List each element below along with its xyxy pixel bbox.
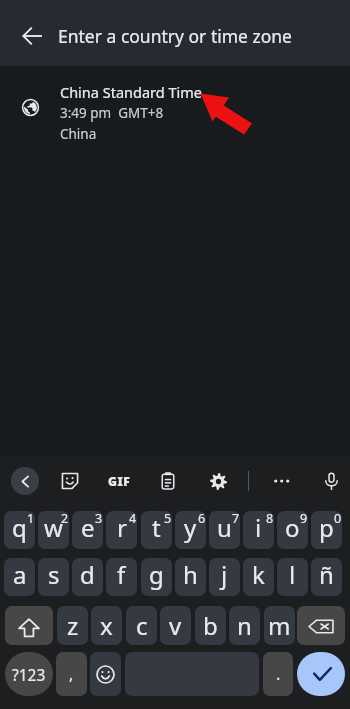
button[interactable]: l <box>277 558 308 596</box>
button[interactable]: n <box>229 606 260 645</box>
staticText: ñ <box>319 558 334 591</box>
button[interactable]: f <box>106 558 137 596</box>
button[interactable]: y <box>175 511 206 549</box>
button[interactable]: r <box>106 511 137 549</box>
button[interactable]: m <box>264 606 295 645</box>
staticText: f <box>117 558 126 591</box>
button[interactable]: w <box>38 511 69 549</box>
button[interactable]: e <box>72 511 103 549</box>
staticText: b <box>203 609 218 642</box>
button[interactable]: v <box>160 606 191 645</box>
button[interactable]: b <box>195 606 226 645</box>
button[interactable]: , <box>56 652 87 696</box>
button[interactable]: d <box>72 558 103 596</box>
button[interactable]: GIF <box>105 467 133 495</box>
staticText: u <box>217 511 232 544</box>
button[interactable]: g <box>141 558 172 596</box>
button[interactable]: o <box>277 511 308 549</box>
staticText: s <box>48 558 60 591</box>
staticText: c <box>136 609 148 642</box>
button[interactable]: Symbols <box>5 652 53 696</box>
button[interactable]: Emoji <box>90 652 121 696</box>
staticText: , <box>69 663 74 685</box>
staticText: 4 <box>129 511 137 527</box>
staticText: k <box>252 558 265 591</box>
staticText: r <box>117 511 127 544</box>
staticText: g <box>149 558 164 591</box>
staticText: l <box>289 558 296 591</box>
staticText: x <box>100 609 113 642</box>
button[interactable]: Collapse toolbar <box>11 467 39 495</box>
staticText: China Standard Time <box>60 82 202 102</box>
button[interactable]: ñ <box>311 558 342 596</box>
staticText: h <box>183 558 198 591</box>
button[interactable]: Stickers <box>56 467 84 495</box>
staticText: n <box>237 609 252 642</box>
staticText: y <box>184 511 197 544</box>
button[interactable]: i <box>243 511 274 549</box>
staticText: w <box>44 511 63 544</box>
button[interactable]: Clipboard <box>154 467 182 495</box>
button[interactable]: j <box>209 558 240 596</box>
staticText: 3 <box>95 511 103 527</box>
staticText: j <box>221 558 228 591</box>
button[interactable]: s <box>38 558 69 596</box>
staticText: p <box>319 511 334 544</box>
staticText: 0 <box>334 511 342 527</box>
staticText: 6 <box>198 511 206 527</box>
button[interactable]: a <box>4 558 35 596</box>
staticText: 9 <box>300 511 308 527</box>
staticText: Enter a country or time zone <box>58 24 292 48</box>
button[interactable]: Settings <box>204 467 232 495</box>
staticText: a <box>13 558 27 591</box>
staticText: 3:49 pm GMT+8 <box>60 104 164 122</box>
staticText: 8 <box>266 511 274 527</box>
button[interactable]: p <box>311 511 342 549</box>
staticText: q <box>12 511 27 544</box>
button[interactable]: x <box>91 606 122 645</box>
staticText: China <box>60 125 97 143</box>
staticText: t <box>152 511 161 544</box>
button[interactable]: . <box>263 652 293 696</box>
button[interactable]: More options <box>267 467 295 495</box>
button[interactable]: Enter <box>297 652 345 696</box>
staticText: m <box>268 609 291 642</box>
staticText: 2 <box>61 511 69 527</box>
button[interactable]: u <box>209 511 240 549</box>
staticText: ?123 <box>12 664 46 685</box>
button[interactable]: Back <box>15 19 49 53</box>
staticText: 5 <box>164 511 172 527</box>
staticText: 7 <box>232 511 240 527</box>
button[interactable]: h <box>175 558 206 596</box>
staticText: GIF <box>108 473 131 489</box>
staticText: e <box>81 511 95 544</box>
staticText: v <box>169 609 182 642</box>
button[interactable]: Voice input <box>317 467 345 495</box>
staticText: 1 <box>27 511 35 527</box>
staticText: o <box>285 511 300 544</box>
button[interactable]: c <box>126 606 157 645</box>
button[interactable]: q <box>4 511 35 549</box>
staticText: . <box>276 663 281 685</box>
button[interactable]: China Standard Time <box>0 66 350 154</box>
staticText: d <box>80 558 95 591</box>
button[interactable]: Shift <box>5 606 53 645</box>
button[interactable]: k <box>243 558 274 596</box>
button[interactable]: t <box>141 511 172 549</box>
button[interactable]: z <box>57 606 88 645</box>
staticText: i <box>255 511 262 544</box>
button[interactable]: Backspace <box>297 606 345 645</box>
staticText: z <box>67 609 79 642</box>
